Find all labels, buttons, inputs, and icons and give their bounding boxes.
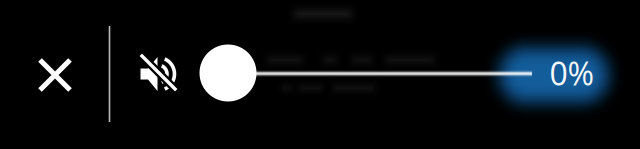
button[interactable]: Unmute bbox=[138, 53, 182, 95]
staticText: 0% bbox=[549, 52, 594, 94]
button[interactable]: Close bbox=[33, 53, 77, 97]
